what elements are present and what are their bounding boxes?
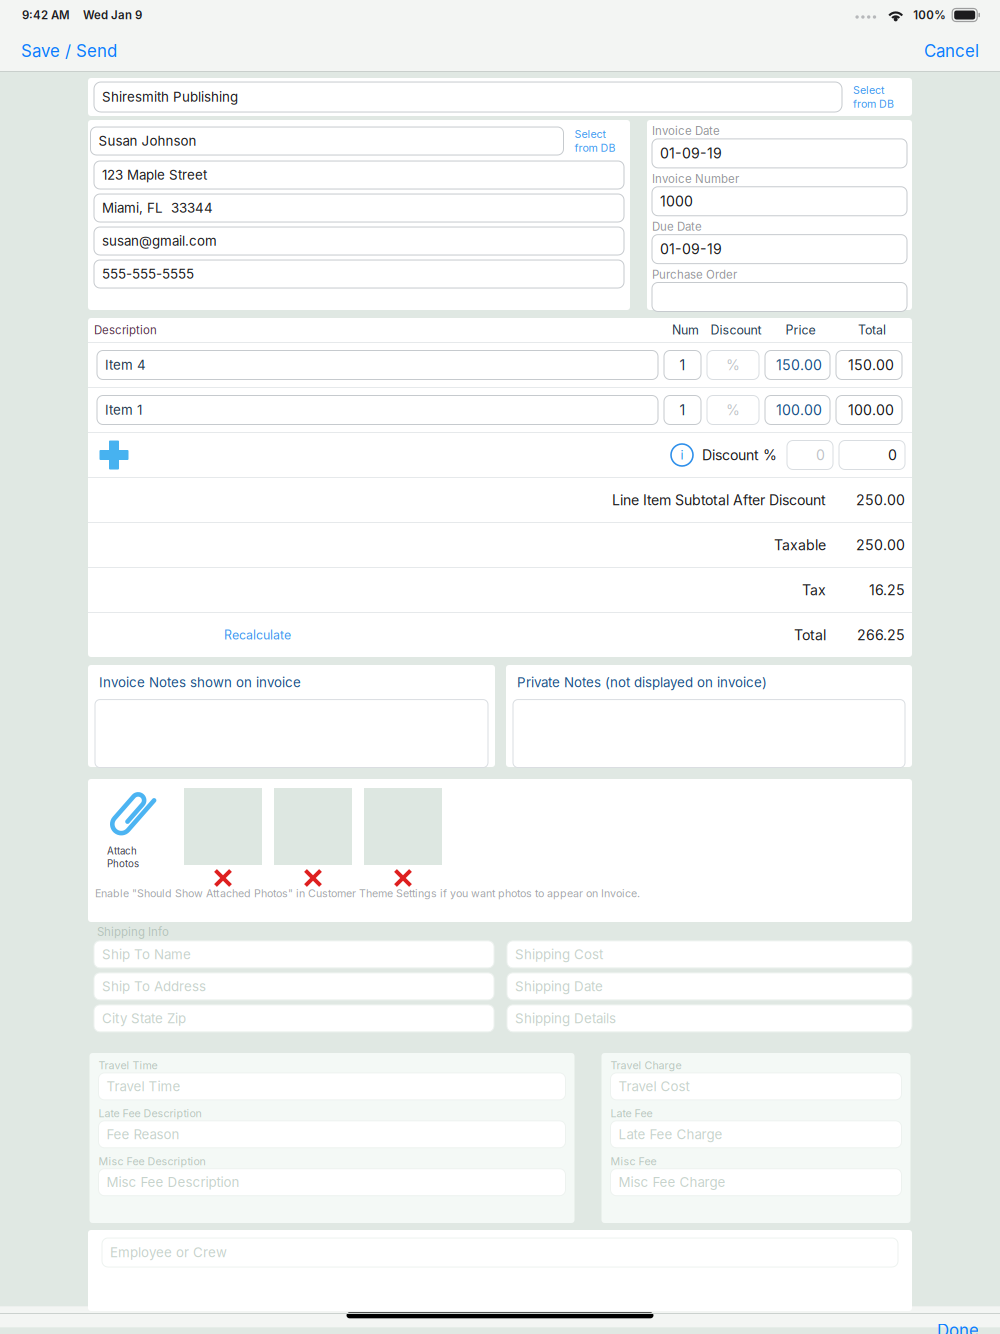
staticText: Misc Fee Charge — [618, 1174, 725, 1190]
staticText: 1 — [679, 356, 685, 373]
staticText: Select — [574, 128, 605, 140]
staticText: 250.00 — [856, 491, 905, 508]
staticText: 150.00 — [776, 356, 822, 373]
button[interactable]: Select — [842, 81, 906, 113]
staticText: Photos — [107, 858, 139, 870]
staticText: Late Fee Charge — [618, 1126, 722, 1142]
staticText: Enable "Should Show Attached Photos" in … — [95, 887, 640, 900]
button[interactable]: Select — [563, 126, 627, 156]
button[interactable]: Remove photo — [388, 869, 418, 887]
staticText: City State Zip — [102, 1010, 186, 1026]
staticText: 100.00 — [848, 401, 894, 418]
staticText: Due Date — [652, 220, 702, 234]
staticText: % — [726, 356, 740, 373]
staticText: Shiresmith Publishing — [102, 89, 238, 105]
staticText: Num — [672, 322, 699, 337]
staticText: 250.00 — [856, 536, 905, 553]
staticText: Done — [937, 1320, 979, 1334]
staticText: Recalculate — [224, 627, 291, 642]
staticText: Shipping Details — [515, 1010, 616, 1026]
staticText: Save / Send — [21, 41, 117, 61]
button[interactable]: Remove photo — [208, 869, 238, 887]
staticText: Invoice Notes shown on invoice — [99, 674, 301, 690]
button[interactable]: Save / Send — [0, 31, 138, 71]
staticText: Discount % — [702, 446, 777, 463]
staticText: Private Notes (not displayed on invoice) — [517, 674, 767, 690]
staticText: Fee Reason — [106, 1126, 179, 1142]
staticText: 0 — [888, 446, 897, 463]
staticText: i — [680, 447, 683, 462]
staticText: Tax — [802, 581, 826, 598]
button[interactable]: Add line item — [94, 436, 134, 474]
staticText: Invoice Date — [652, 124, 720, 138]
staticText: 01-09-19 — [660, 241, 722, 258]
staticText: Travel Cost — [618, 1078, 689, 1094]
staticText: 1000 — [660, 193, 693, 210]
staticText: 100% — [913, 8, 946, 22]
staticText: from DB — [853, 97, 894, 110]
staticText: Discount — [710, 322, 761, 337]
staticText: Misc Fee Description — [98, 1155, 205, 1168]
button[interactable]: Recalculate — [215, 618, 300, 651]
staticText: % — [726, 401, 740, 418]
staticText: susan@gmail.com — [102, 233, 217, 249]
staticText: Misc Fee — [610, 1155, 656, 1168]
staticText: Line Item Subtotal After Discount — [612, 491, 826, 508]
staticText: 150.00 — [848, 356, 894, 373]
staticText: Travel Charge — [610, 1059, 681, 1072]
staticText: Taxable — [774, 536, 826, 553]
staticText: Wed Jan 9 — [83, 8, 142, 22]
staticText: Item 4 — [105, 357, 146, 373]
staticText: Attach — [107, 845, 137, 857]
staticText: Total — [794, 626, 826, 643]
staticText: Susan Johnson — [98, 133, 196, 149]
staticText: 9:42 AM — [22, 8, 70, 22]
staticText: Item 1 — [105, 402, 142, 418]
staticText: Description — [94, 323, 157, 337]
staticText: Shipping Info — [97, 925, 169, 939]
staticText: Shipping Cost — [515, 946, 603, 962]
button[interactable]: Remove photo — [298, 869, 328, 887]
staticText: Price — [785, 322, 815, 337]
staticText: 555-555-5555 — [102, 266, 194, 282]
staticText: Select — [853, 84, 884, 96]
staticText: from DB — [574, 141, 615, 154]
staticText: 123 Maple Street — [102, 167, 207, 183]
staticText: Misc Fee Description — [106, 1174, 239, 1190]
staticText: Travel Time — [106, 1078, 180, 1094]
staticText: Late Fee Description — [98, 1107, 201, 1120]
staticText: Purchase Order — [652, 268, 737, 281]
staticText: Invoice Number — [652, 172, 739, 186]
button[interactable]: Cancel — [903, 31, 1000, 71]
staticText: Shipping Date — [515, 978, 603, 994]
staticText: Travel Time — [98, 1059, 157, 1072]
staticText: 16.25 — [869, 581, 905, 598]
staticText: Total — [858, 322, 886, 337]
button[interactable]: Attach — [107, 788, 183, 882]
staticText: Ship To Name — [102, 946, 191, 962]
staticText: Late Fee — [610, 1107, 652, 1120]
staticText: Ship To Address — [102, 978, 206, 994]
staticText: 01-09-19 — [660, 145, 722, 162]
staticText: 0 — [816, 446, 825, 463]
staticText: Cancel — [924, 41, 979, 61]
staticText: Employee or Crew — [110, 1244, 227, 1260]
staticText: Miami, FL 33344 — [102, 200, 213, 216]
staticText: 100.00 — [776, 401, 822, 418]
staticText: 1 — [679, 401, 685, 418]
staticText: 266.25 — [857, 626, 905, 643]
button[interactable]: Done — [916, 1306, 1000, 1334]
